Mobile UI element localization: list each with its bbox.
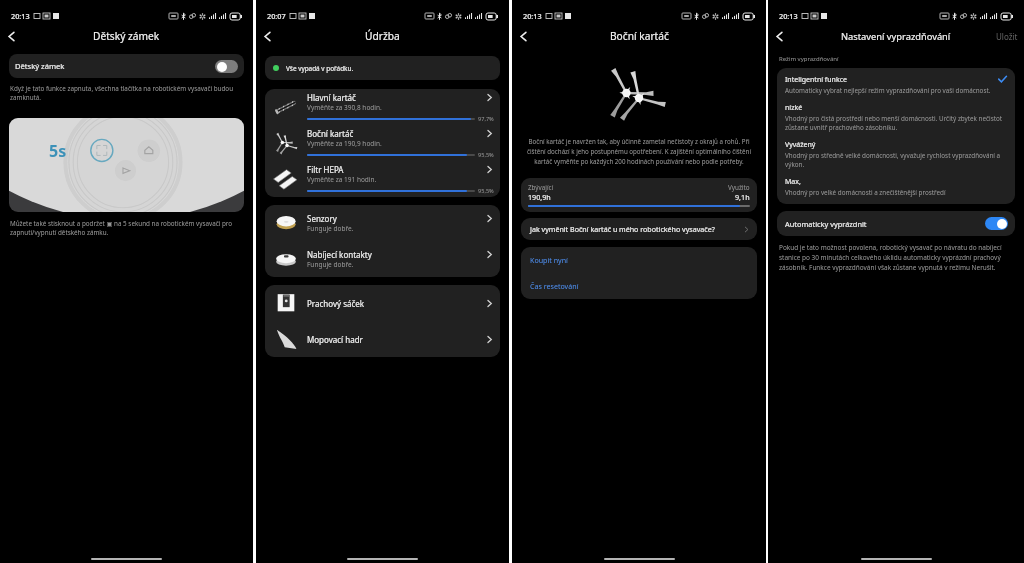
staticText: Funguje dobře.: [307, 260, 354, 269]
button[interactable]: Dětský zámek: [9, 54, 244, 78]
staticText: Nastavení vyprazdňování: [841, 30, 951, 43]
staticText: Vhodný pro čistá prostředí nebo menší do…: [785, 114, 1007, 132]
staticText: Když je tato funkce zapnuta, všechna tla…: [10, 84, 243, 102]
staticText: Využito: [728, 183, 750, 192]
button[interactable]: Nabíjecí kontakty: [265, 241, 500, 277]
staticText: Boční kartáč: [307, 128, 485, 139]
staticText: 5s: [49, 140, 67, 162]
button[interactable]: Back: [768, 25, 790, 47]
button[interactable]: Čas resetování: [521, 273, 757, 299]
staticText: nízké: [785, 103, 803, 113]
button[interactable]: nízké: [785, 103, 1007, 132]
staticText: Vyvážený: [785, 140, 816, 150]
button[interactable]: Filtr HEPA: [265, 161, 500, 197]
button[interactable]: Prachový sáček: [265, 285, 500, 321]
staticText: Jak vyměnit Boční kartáč u mého robotick…: [530, 224, 743, 234]
staticText: 9,1h: [735, 192, 750, 202]
staticText: Max,: [785, 177, 801, 187]
staticText: Automaticky vybrat nejlepší režim vypraz…: [785, 86, 991, 95]
staticText: Boční kartáč je navržen tak, aby účinně …: [523, 137, 755, 165]
button[interactable]: Koupit nyní: [521, 247, 757, 273]
button[interactable]: Mopovací hadr: [265, 321, 500, 357]
staticText: Uložit: [996, 31, 1018, 42]
staticText: Vhodný pro velké domácnosti a znečištěně…: [785, 188, 946, 197]
staticText: Koupit nyní: [530, 255, 568, 265]
staticText: Inteligentní funkce: [785, 75, 847, 85]
button[interactable]: Vyvážený: [785, 140, 1007, 169]
staticText: Režim vyprazdňování: [779, 55, 839, 63]
button[interactable]: Vše vypadá v pořádku.: [265, 56, 500, 80]
staticText: Filtr HEPA: [307, 164, 485, 175]
staticText: Vše vypadá v pořádku.: [286, 64, 354, 73]
staticText: Boční kartáč: [610, 29, 669, 43]
staticText: 190,9h: [528, 192, 551, 202]
button[interactable]: Jak vyměnit Boční kartáč u mého robotick…: [521, 218, 757, 240]
button[interactable]: Automaticky vyprázdnit: [777, 211, 1015, 236]
staticText: Mopovací hadr: [307, 334, 485, 345]
staticText: Nabíjecí kontakty: [307, 249, 485, 260]
staticText: 97,7%: [478, 115, 494, 123]
staticText: 20:07: [267, 11, 286, 21]
staticText: Senzory: [307, 213, 485, 224]
staticText: Dětský zámek: [15, 61, 65, 71]
staticText: 20:13: [523, 11, 542, 21]
staticText: Dětský zámek: [93, 29, 160, 43]
button[interactable]: Boční kartáč: [265, 125, 500, 161]
staticText: Funguje dobře.: [307, 224, 354, 233]
staticText: Vyměňte za 190,9 hodin.: [307, 139, 382, 148]
staticText: Prachový sáček: [307, 298, 485, 309]
staticText: Vhodný pro středně velké domácnosti, vyv…: [785, 151, 1007, 169]
staticText: Hlavní kartáč: [307, 92, 485, 103]
button[interactable]: Inteligentní funkce: [785, 75, 1007, 95]
staticText: Údržba: [365, 29, 400, 43]
staticText: Pokud je tato možnost povolena, robotick…: [779, 243, 1013, 271]
staticText: Můžete také stisknout a podržet ▣ na 5 s…: [10, 219, 243, 237]
staticText: Vyměňte za 390,8 hodin.: [307, 103, 382, 112]
staticText: 95,5%: [478, 187, 494, 195]
staticText: Čas resetování: [530, 281, 579, 291]
staticText: 20:13: [11, 11, 30, 21]
staticText: Vyměňte za 191 hodin.: [307, 175, 377, 184]
staticText: 20:13: [779, 11, 798, 21]
button[interactable]: Senzory: [265, 205, 500, 241]
button[interactable]: Max,: [785, 177, 1007, 197]
button[interactable]: Uložit: [990, 27, 1024, 46]
button[interactable]: Back: [512, 25, 534, 47]
staticText: Automaticky vyprázdnit: [785, 219, 867, 229]
button[interactable]: Hlavní kartáč: [265, 89, 500, 125]
button[interactable]: Back: [0, 25, 22, 47]
staticText: Zbývající: [528, 183, 554, 192]
button[interactable]: Back: [256, 25, 278, 47]
staticText: 95,5%: [478, 151, 494, 159]
